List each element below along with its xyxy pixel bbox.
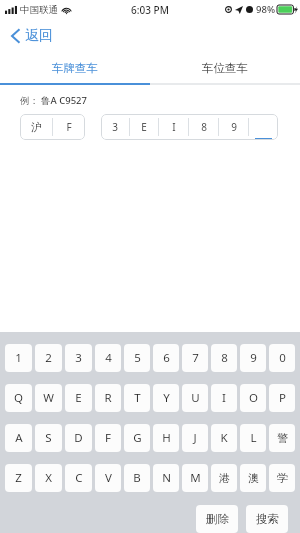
button[interactable]: E [65,384,92,412]
button[interactable]: V [95,464,121,492]
button[interactable]: 警 [269,424,295,452]
button[interactable]: N [153,464,179,492]
staticText: L [250,430,257,446]
staticText: E [75,390,82,406]
staticText: 3 [112,120,118,134]
staticText: 删除 [206,512,229,526]
staticText: T [134,390,141,406]
staticText: 例： [20,95,39,107]
button[interactable]: S [35,424,62,452]
staticText: U [191,390,200,406]
staticText: Q [14,390,23,406]
staticText: W [43,390,54,406]
staticText: B [133,470,141,486]
button[interactable]: P [269,384,295,412]
staticText: 7 [192,350,199,366]
staticText: J [193,430,197,446]
button[interactable]: 4 [95,344,121,372]
button[interactable]: 1 [5,344,32,372]
button[interactable]: 车牌查车 [0,52,150,83]
button[interactable]: M [182,464,208,492]
button[interactable]: H [153,424,179,452]
button[interactable]: 9 [240,344,266,372]
button[interactable]: 返回 [7,23,57,49]
button[interactable]: F [95,424,121,452]
button[interactable]: L [240,424,266,452]
button[interactable]: U [182,384,208,412]
button[interactable]: 6 [153,344,179,372]
button[interactable]: X [35,464,62,492]
button[interactable]: 学 [269,464,295,492]
staticText: K [220,430,228,446]
staticText: 车牌查车 [52,61,98,75]
button[interactable]: 8 [211,344,237,372]
button[interactable]: W [35,384,62,412]
staticText: 3 [75,350,82,366]
button[interactable]: 搜索 [246,505,288,533]
staticText: 中国联通 [20,4,58,16]
button[interactable]: T [124,384,150,412]
button[interactable]: Z [5,464,32,492]
staticText: H [162,430,171,446]
button[interactable]: 0 [269,344,295,372]
button[interactable]: I [211,384,237,412]
button[interactable]: 车位查车 [150,52,300,83]
button[interactable]: C [65,464,92,492]
button[interactable]: 删除 [196,505,238,533]
staticText: O [249,390,258,406]
button[interactable]: R [95,384,121,412]
button[interactable]: 港 [211,464,237,492]
staticText: F [66,120,72,134]
staticText: 2 [45,350,52,366]
staticText: 车位查车 [202,61,248,75]
button[interactable]: 沪 [20,114,85,140]
button[interactable]: 7 [182,344,208,372]
staticText: N [162,470,171,486]
staticText: G [133,430,142,446]
staticText: E [141,120,147,134]
staticText: 返回 [25,27,53,45]
button[interactable]: 3 [101,114,278,140]
staticText: A [15,430,23,446]
staticText: M [190,470,201,486]
button[interactable]: 3 [65,344,92,372]
button[interactable]: Y [153,384,179,412]
staticText: 警 [277,431,288,445]
button[interactable]: O [240,384,266,412]
staticText: F [105,430,111,446]
button[interactable]: 5 [124,344,150,372]
button[interactable]: K [211,424,237,452]
staticText: 9 [250,350,257,366]
staticText: Z [15,470,22,486]
staticText: 港 [219,471,230,485]
staticText: 8 [201,120,207,134]
staticText: S [45,430,52,446]
button[interactable]: 澳 [240,464,266,492]
staticText: V [105,470,112,486]
staticText: C [75,470,83,486]
button[interactable]: D [65,424,92,452]
staticText: 8 [221,350,228,366]
staticText: 98% [256,3,275,16]
button[interactable]: A [5,424,32,452]
staticText: 4 [105,350,112,366]
staticText: 鲁A C9527 [41,94,87,107]
button[interactable]: B [124,464,150,492]
staticText: 澳 [248,471,259,485]
button[interactable]: 2 [35,344,62,372]
button[interactable]: G [124,424,150,452]
staticText: 5 [134,350,141,366]
staticText: 6:03 PM [131,3,169,17]
button[interactable]: Q [5,384,32,412]
staticText: R [104,390,112,406]
staticText: 0 [279,350,286,366]
button[interactable]: J [182,424,208,452]
staticText: 搜索 [256,512,279,526]
staticText: 9 [231,120,237,134]
staticText: D [74,430,83,446]
staticText: 学 [277,471,288,485]
staticText: P [279,390,286,406]
staticText: X [45,470,52,486]
staticText: 6 [163,350,170,366]
staticText: 沪 [31,120,42,134]
